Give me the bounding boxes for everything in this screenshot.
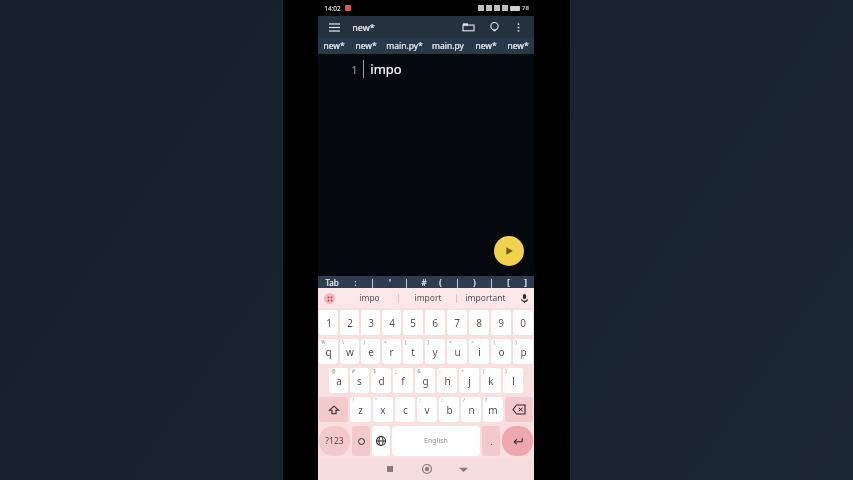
button[interactable]: f — [393, 368, 413, 393]
button[interactable]: t — [403, 339, 423, 364]
button[interactable]: 3 — [361, 310, 380, 335]
staticText: $ — [373, 368, 376, 374]
button[interactable]: Run — [494, 236, 524, 266]
button[interactable]: 4 — [382, 310, 401, 335]
button[interactable]: important — [457, 288, 514, 308]
button[interactable]: 5 — [403, 310, 423, 335]
button[interactable]: | — [364, 276, 381, 288]
button[interactable]: e — [361, 339, 380, 364]
button[interactable]: a — [329, 368, 348, 393]
button[interactable]: ' — [381, 276, 398, 288]
button[interactable]: [ — [500, 276, 517, 288]
button[interactable]: q — [319, 339, 338, 364]
staticText: " — [375, 397, 377, 403]
button[interactable]: English — [392, 426, 480, 456]
staticText: 3 — [368, 316, 374, 330]
button[interactable]: b — [439, 397, 459, 422]
button[interactable]: new* — [470, 38, 502, 54]
button[interactable]: Home — [408, 458, 445, 480]
button[interactable]: w — [340, 339, 359, 364]
staticText: i — [478, 345, 481, 359]
button[interactable]: 7 — [447, 310, 467, 335]
button[interactable]: ] — [517, 276, 534, 288]
button[interactable]: : — [346, 276, 364, 288]
staticText: - — [439, 368, 441, 374]
button[interactable]: Open folder — [460, 19, 476, 35]
button[interactable]: | — [398, 276, 415, 288]
staticText: important — [465, 292, 506, 304]
button[interactable]: p — [513, 339, 533, 364]
button[interactable]: o — [491, 339, 511, 364]
button[interactable]: r — [382, 339, 401, 364]
button[interactable]: 1 — [319, 310, 338, 335]
button[interactable]: Keyboard settings — [318, 288, 340, 308]
button[interactable]: Hints — [486, 19, 502, 35]
staticText: ] — [427, 339, 429, 345]
button[interactable]: x — [373, 397, 393, 422]
button[interactable]: Tab — [318, 276, 346, 288]
button[interactable]: . — [482, 426, 500, 456]
button[interactable]: i — [469, 339, 489, 364]
button[interactable]: new* — [350, 38, 382, 54]
button[interactable]: 6 — [425, 310, 445, 335]
staticText: new* — [352, 21, 375, 33]
button[interactable]: c — [395, 397, 415, 422]
staticText: 9 — [498, 316, 504, 330]
button[interactable]: impo — [340, 288, 398, 308]
button[interactable]: Hide keyboard — [445, 458, 482, 480]
staticText: ) — [473, 277, 476, 288]
button[interactable]: 8 — [469, 310, 489, 335]
button[interactable]: l — [503, 368, 523, 393]
button[interactable]: h — [437, 368, 457, 393]
staticText: j — [468, 374, 471, 388]
button[interactable]: z — [350, 397, 371, 422]
button[interactable]: d — [371, 368, 391, 393]
button[interactable]: m — [483, 397, 503, 422]
button[interactable]: import — [399, 288, 456, 308]
staticText: [ — [507, 277, 510, 288]
staticText: m — [488, 403, 498, 417]
button[interactable]: n — [461, 397, 481, 422]
button[interactable]: u — [447, 339, 467, 364]
button[interactable]: Recents — [371, 458, 408, 480]
button[interactable]: Menu — [326, 19, 342, 35]
button[interactable]: main.py* — [382, 38, 426, 54]
button[interactable]: Backspace — [505, 397, 533, 422]
staticText: new* — [475, 40, 497, 52]
staticText: / — [463, 397, 465, 403]
button[interactable]: new* — [502, 38, 534, 54]
button[interactable]: 9 — [491, 310, 511, 335]
staticText: 1 — [351, 62, 358, 77]
button[interactable]: Change language — [372, 426, 390, 456]
button[interactable]: Shift — [319, 397, 348, 422]
staticText: o — [498, 345, 505, 359]
button[interactable]: 2 — [340, 310, 359, 335]
button[interactable]: # — [415, 276, 432, 288]
button[interactable]: ( — [432, 276, 449, 288]
button[interactable]: k — [481, 368, 501, 393]
button[interactable]: Emoji — [352, 426, 370, 456]
staticText: a — [336, 374, 342, 388]
button[interactable]: new* — [318, 38, 350, 54]
staticText: u — [454, 345, 461, 359]
staticText: q — [325, 345, 332, 359]
button[interactable]: v — [417, 397, 437, 422]
button[interactable]: j — [459, 368, 479, 393]
button[interactable]: main.py — [426, 38, 470, 54]
button[interactable]: g — [415, 368, 435, 393]
staticText: ; — [441, 397, 443, 403]
staticText: y — [432, 345, 438, 359]
button[interactable]: Enter — [502, 426, 533, 456]
button[interactable]: Voice input — [514, 288, 534, 308]
staticText: ? — [485, 397, 487, 403]
button[interactable]: y — [425, 339, 445, 364]
staticText: _ — [395, 368, 397, 374]
button[interactable]: | — [449, 276, 466, 288]
button[interactable]: | — [483, 276, 500, 288]
staticText: 14:02 — [324, 4, 341, 13]
button[interactable]: ?123 — [319, 426, 350, 456]
button[interactable]: 0 — [513, 310, 533, 335]
button[interactable]: More options — [510, 19, 526, 35]
button[interactable]: s — [350, 368, 369, 393]
button[interactable]: ) — [466, 276, 483, 288]
